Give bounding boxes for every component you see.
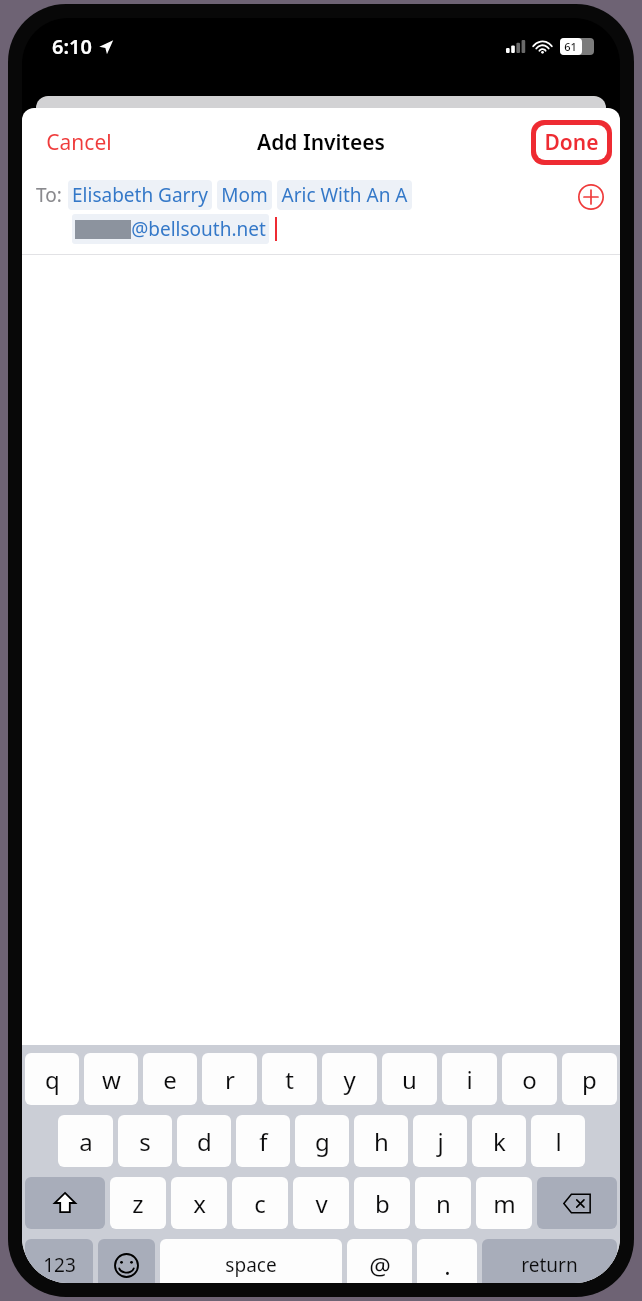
button[interactable]: return	[482, 1239, 617, 1283]
button[interactable]: b	[354, 1177, 410, 1229]
staticText: 61	[564, 39, 577, 54]
staticText: p	[582, 1063, 597, 1096]
button[interactable]: i	[442, 1053, 497, 1105]
button[interactable]: e	[143, 1053, 197, 1105]
button[interactable]: x	[171, 1177, 227, 1229]
button[interactable]: a	[58, 1115, 113, 1167]
staticText: Elisabeth Garry	[72, 182, 208, 208]
button[interactable]: Add contact	[576, 182, 606, 212]
button[interactable]: Emoji	[98, 1239, 155, 1283]
button[interactable]: w	[84, 1053, 138, 1105]
button[interactable]: c	[232, 1177, 288, 1229]
staticText: y	[343, 1063, 356, 1096]
staticText: Mom	[221, 182, 268, 208]
staticText: Done	[544, 128, 599, 157]
staticText: a	[79, 1125, 93, 1158]
button[interactable]: Shift	[25, 1177, 105, 1229]
staticText: e	[163, 1063, 177, 1096]
staticText: x	[193, 1187, 206, 1220]
button[interactable]: z	[110, 1177, 166, 1229]
button[interactable]: v	[293, 1177, 349, 1229]
button[interactable]: s	[118, 1115, 172, 1167]
staticText: b	[375, 1187, 390, 1220]
button[interactable]: Cancel	[36, 122, 122, 163]
staticText: .	[444, 1249, 451, 1282]
button[interactable]: g	[295, 1115, 349, 1167]
staticText: o	[522, 1063, 537, 1096]
button[interactable]: Mom	[221, 182, 268, 208]
button[interactable]: Backspace	[537, 1177, 617, 1229]
button[interactable]: d	[177, 1115, 231, 1167]
staticText: d	[197, 1125, 212, 1158]
staticText: g	[315, 1125, 330, 1158]
staticText: j	[437, 1125, 444, 1158]
staticText: @	[369, 1249, 391, 1282]
button[interactable]: q	[25, 1053, 79, 1105]
button[interactable]: r	[202, 1053, 257, 1105]
staticText: s	[139, 1125, 151, 1158]
staticText: t	[285, 1063, 294, 1096]
staticText: n	[436, 1187, 451, 1220]
button[interactable]: j	[413, 1115, 467, 1167]
staticText: u	[402, 1063, 417, 1096]
button[interactable]: u	[382, 1053, 437, 1105]
button[interactable]: .	[417, 1239, 477, 1283]
staticText: z	[132, 1187, 144, 1220]
staticText: Aric With An A	[281, 182, 408, 208]
staticText: space	[225, 1252, 277, 1278]
staticText: m	[493, 1187, 516, 1220]
button[interactable]: m	[476, 1177, 532, 1229]
button[interactable]: 123	[25, 1239, 93, 1283]
button[interactable]: l	[531, 1115, 585, 1167]
staticText: To:	[36, 182, 62, 208]
button[interactable]: @bellsouth.net	[75, 216, 266, 242]
staticText: c	[254, 1187, 266, 1220]
staticText: f	[259, 1125, 268, 1158]
staticText: @bellsouth.net	[131, 216, 266, 242]
button[interactable]: p	[562, 1053, 617, 1105]
staticText: r	[225, 1063, 235, 1096]
staticText: w	[102, 1063, 121, 1096]
button[interactable]: t	[262, 1053, 317, 1105]
staticText: l	[555, 1125, 562, 1158]
staticText: 123	[43, 1252, 76, 1278]
button[interactable]: space	[160, 1239, 342, 1283]
staticText: q	[45, 1063, 60, 1096]
button[interactable]: h	[354, 1115, 408, 1167]
staticText: k	[493, 1125, 506, 1158]
staticText: v	[315, 1187, 328, 1220]
button[interactable]: @	[347, 1239, 412, 1283]
staticText: h	[374, 1125, 389, 1158]
button[interactable]: Elisabeth Garry	[72, 182, 208, 208]
button[interactable]: f	[236, 1115, 290, 1167]
button[interactable]: Done	[536, 125, 607, 160]
button[interactable]: Aric With An A	[281, 182, 408, 208]
staticText: Add Invitees	[257, 128, 385, 157]
button[interactable]: y	[322, 1053, 377, 1105]
staticText: Cancel	[46, 128, 112, 157]
staticText: 6:10	[52, 33, 92, 60]
button[interactable]: k	[472, 1115, 526, 1167]
button[interactable]: o	[502, 1053, 557, 1105]
button[interactable]: n	[415, 1177, 471, 1229]
staticText: return	[521, 1252, 578, 1278]
staticText: i	[466, 1063, 473, 1096]
